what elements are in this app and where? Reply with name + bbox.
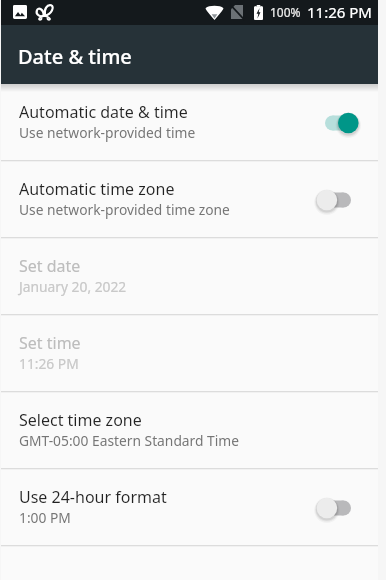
button[interactable]: Toggle Automatic time zone (325, 180, 359, 220)
staticText: January 20, 2022 (19, 277, 127, 296)
staticText: Use network-provided time (19, 123, 196, 142)
button[interactable]: Use 24-hour format (1, 469, 378, 546)
staticText: Date & time (18, 43, 132, 70)
staticText: Automatic date & time (19, 101, 188, 123)
staticText: 1:00 PM (19, 508, 71, 527)
staticText: Set time (19, 332, 81, 354)
staticText: 11:26 PM (19, 354, 79, 373)
staticText: Set date (19, 255, 81, 277)
staticText: 100% (270, 4, 301, 20)
button[interactable]: Select time zone (1, 392, 378, 469)
button[interactable]: Automatic date & time (1, 84, 378, 161)
staticText: 11:26 PM (307, 2, 372, 22)
button[interactable]: Set time (1, 315, 378, 392)
staticText: Use network-provided time zone (19, 200, 230, 219)
staticText: Use 24-hour format (19, 486, 167, 508)
staticText: Select time zone (19, 409, 142, 431)
button[interactable]: Set date (1, 238, 378, 315)
staticText: GMT-05:00 Eastern Standard Time (19, 431, 240, 450)
staticText: Automatic time zone (19, 178, 175, 200)
button[interactable]: Automatic time zone (1, 161, 378, 238)
button[interactable]: Toggle Automatic date & time (325, 103, 359, 143)
button[interactable]: Toggle Use 24-hour format (325, 488, 359, 528)
